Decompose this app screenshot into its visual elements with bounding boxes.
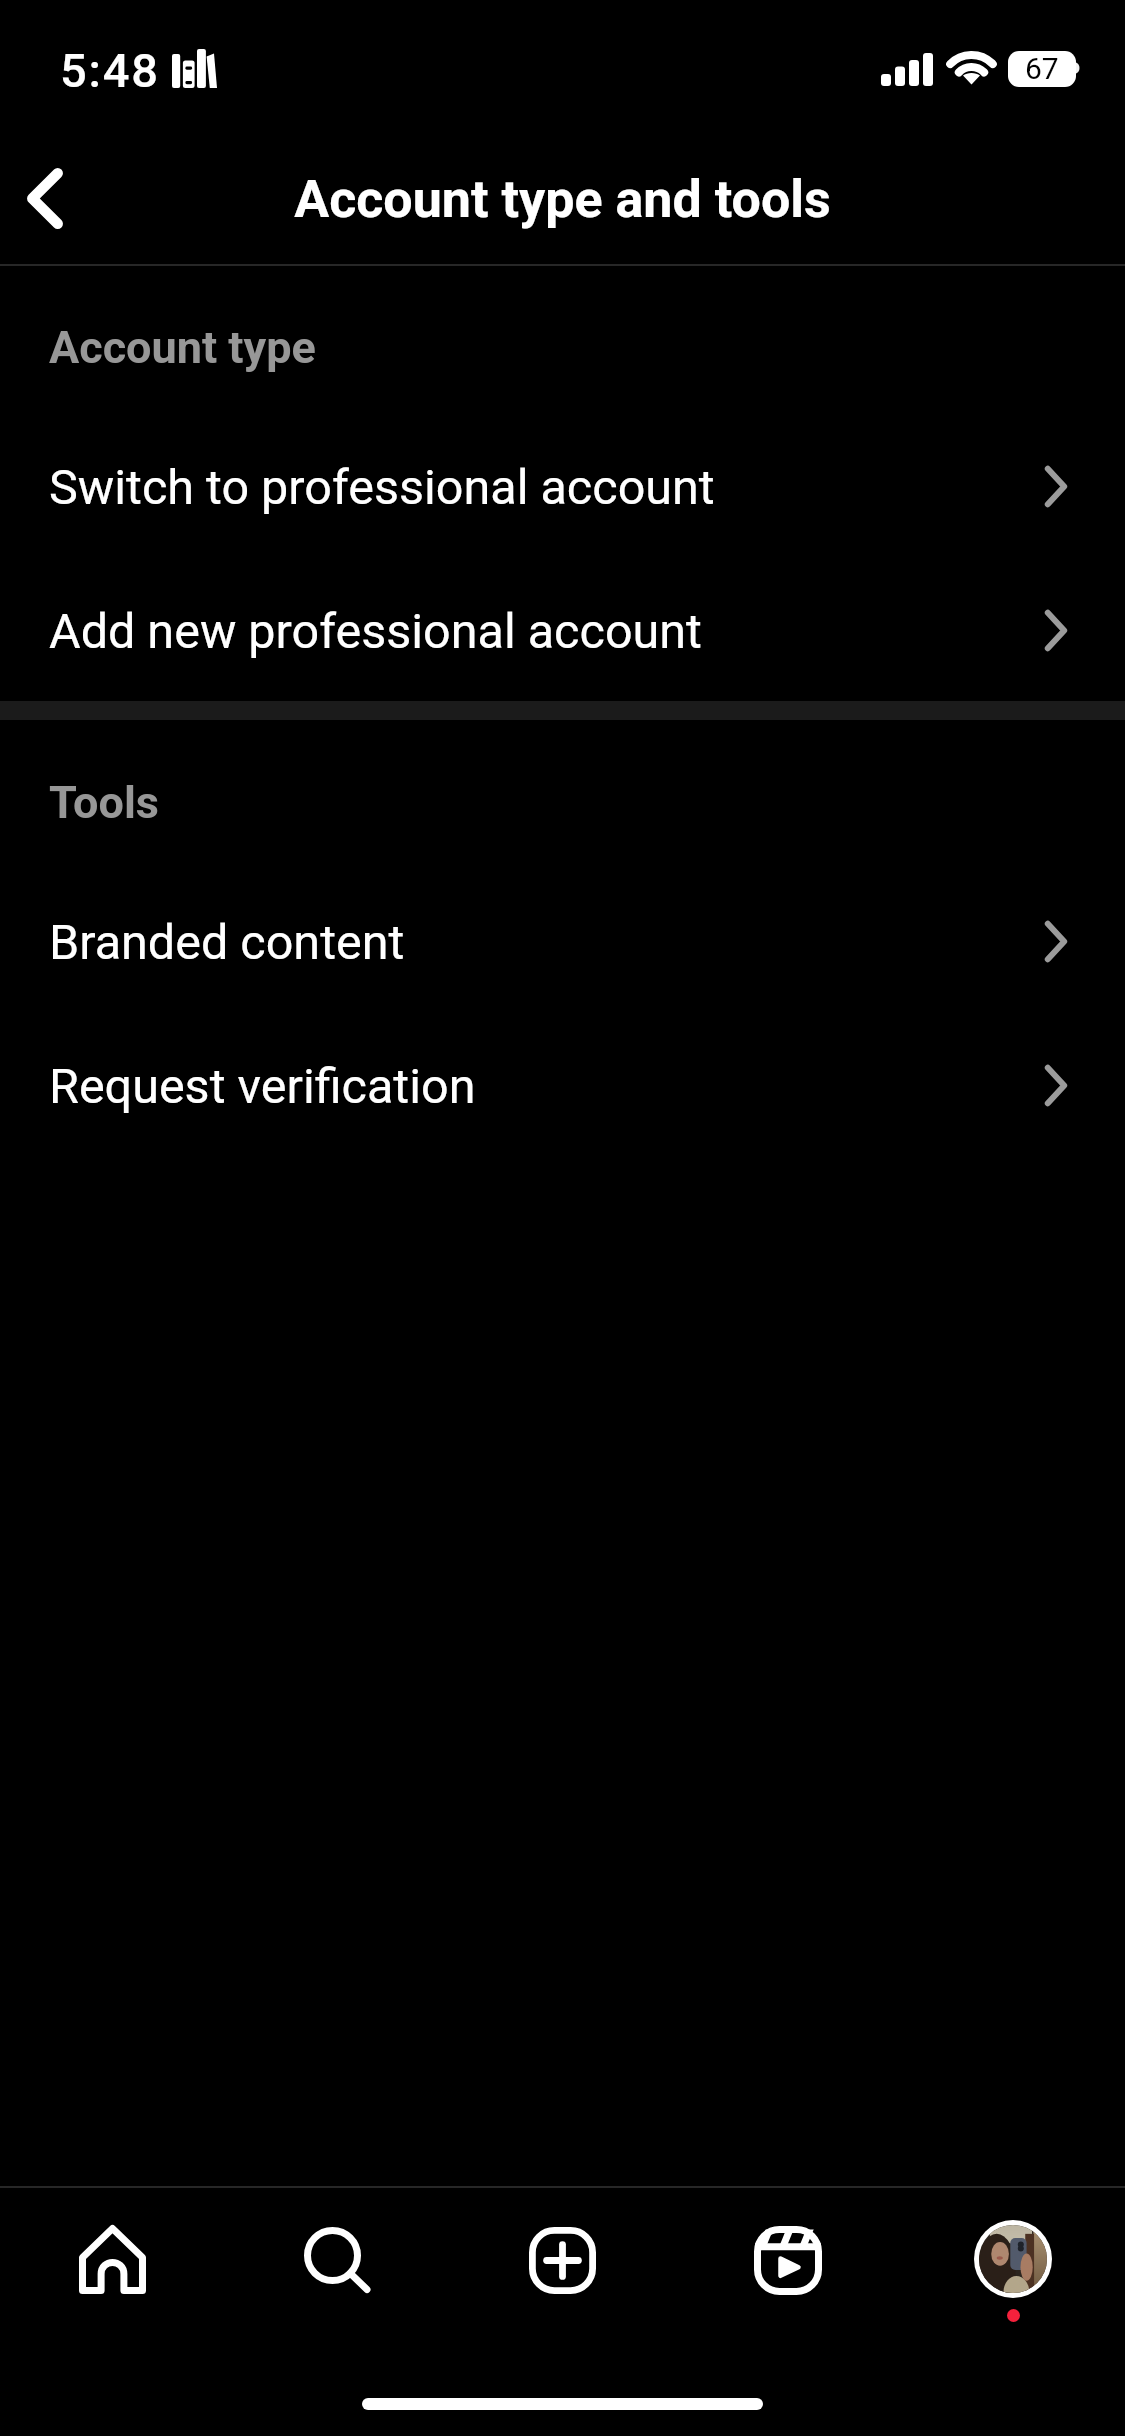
button[interactable]: Profile [900,2190,1125,2330]
staticText: Branded content [49,914,405,971]
button[interactable]: Search [225,2190,450,2330]
staticText: Add new professional account [49,603,702,660]
staticText: Request verification [49,1058,476,1115]
button[interactable]: Reels [675,2190,900,2330]
button[interactable]: Branded content [0,882,1125,1002]
staticText: Tools [49,776,159,829]
button[interactable]: Request verification [0,1026,1125,1146]
staticText: Switch to professional account [49,459,715,516]
staticText: 67 [1025,51,1059,86]
staticText: Account type [49,321,316,374]
button[interactable]: Switch to professional account [0,427,1125,547]
staticText: 5:48 [60,43,160,98]
staticText: Account type and tools [294,169,831,230]
button[interactable]: Create [450,2190,675,2330]
button[interactable]: Home [0,2190,225,2330]
button[interactable]: Back [0,148,95,248]
button[interactable]: Add new professional account [0,571,1125,691]
